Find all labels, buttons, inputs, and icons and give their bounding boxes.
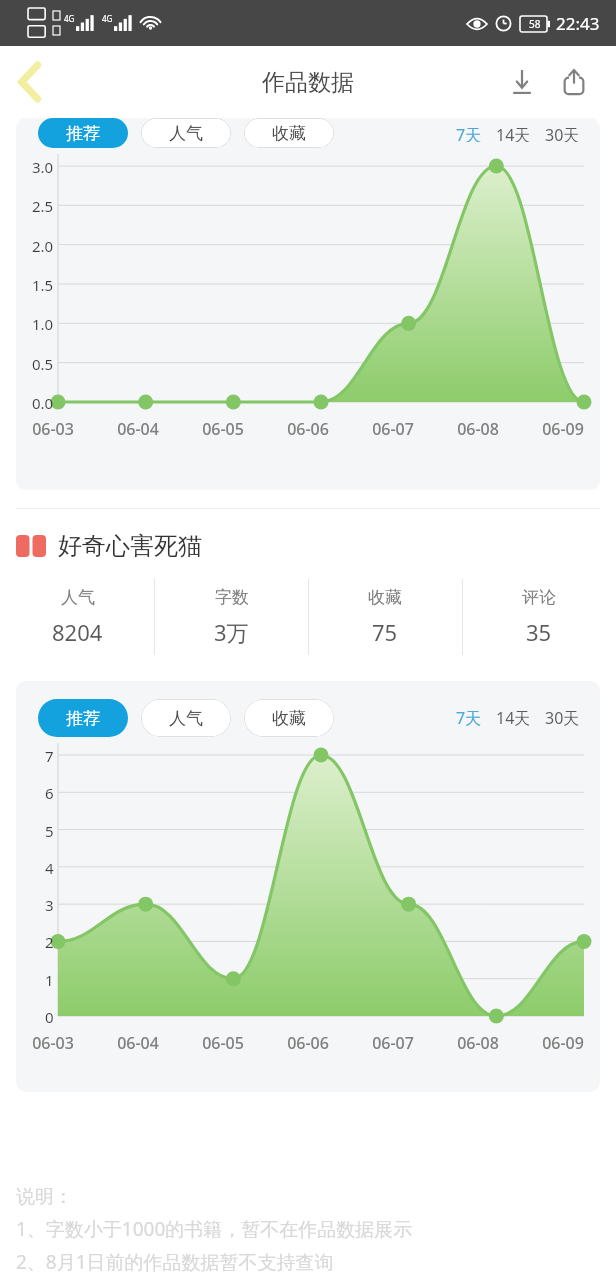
- staticText: 06-07: [356, 1032, 430, 1054]
- staticText: 58: [529, 17, 541, 31]
- staticText: 06-09: [526, 418, 600, 440]
- staticText: 收藏: [368, 587, 402, 608]
- button[interactable]: 30天: [543, 118, 582, 148]
- button[interactable]: 推荐: [38, 118, 128, 148]
- button[interactable]: 7天: [454, 701, 484, 735]
- staticText: 7天: [456, 707, 482, 729]
- staticText: 30天: [545, 124, 580, 142]
- staticText: 说明：: [16, 1185, 73, 1209]
- staticText: 3.0: [32, 157, 54, 175]
- staticText: 06-08: [441, 1032, 515, 1054]
- button[interactable]: 30天: [543, 701, 582, 735]
- staticText: 75: [372, 617, 398, 647]
- staticText: 06-04: [101, 1032, 175, 1054]
- button[interactable]: 推荐: [38, 699, 128, 737]
- staticText: 35: [526, 617, 552, 647]
- button[interactable]: 14天: [494, 701, 533, 735]
- staticText: 字数: [215, 587, 249, 608]
- staticText: 06-03: [16, 1032, 90, 1054]
- staticText: 1、字数小于1000的书籍，暂不在作品数据展示: [16, 1216, 413, 1242]
- staticText: 4G: [64, 13, 75, 24]
- button[interactable]: 14天: [494, 118, 533, 148]
- staticText: 06-06: [271, 418, 345, 440]
- staticText: 2.5: [32, 196, 54, 214]
- staticText: 14天: [496, 124, 531, 142]
- staticText: 06-09: [526, 1032, 600, 1054]
- staticText: 4: [45, 858, 54, 876]
- staticText: 0.0: [32, 393, 54, 411]
- staticText: 06-03: [16, 418, 90, 440]
- staticText: 22:43: [556, 12, 600, 35]
- staticText: 收藏: [272, 123, 306, 144]
- staticText: 7: [45, 746, 54, 764]
- staticText: 1.0: [32, 314, 54, 332]
- staticText: 评论: [522, 587, 556, 608]
- button[interactable]: 人气: [141, 699, 231, 737]
- button[interactable]: Share: [548, 56, 600, 108]
- button[interactable]: Download: [496, 56, 548, 108]
- staticText: 作品数据: [262, 68, 354, 97]
- staticText: 0.5: [32, 354, 54, 372]
- staticText: 4G: [102, 13, 113, 24]
- staticText: 8204: [52, 617, 103, 647]
- staticText: 06-04: [101, 418, 175, 440]
- staticText: 7天: [456, 124, 482, 142]
- staticText: 收藏: [272, 708, 306, 729]
- staticText: 人气: [169, 708, 203, 729]
- staticText: 30天: [545, 707, 580, 729]
- staticText: 14天: [496, 707, 531, 729]
- staticText: 2.0: [32, 236, 54, 254]
- staticText: 人气: [169, 123, 203, 144]
- staticText: 0: [45, 1007, 54, 1025]
- staticText: 推荐: [66, 708, 100, 729]
- staticText: 06-06: [271, 1032, 345, 1054]
- staticText: 06-07: [356, 418, 430, 440]
- staticText: 2: [45, 932, 54, 950]
- staticText: 人气: [61, 587, 95, 608]
- staticText: 3万: [214, 617, 249, 647]
- button[interactable]: Back: [0, 52, 60, 112]
- staticText: 好奇心害死猫: [58, 531, 202, 561]
- staticText: 3: [45, 895, 54, 913]
- button[interactable]: 人气: [141, 118, 231, 148]
- staticText: 1: [45, 970, 54, 988]
- staticText: 06-08: [441, 418, 515, 440]
- staticText: 2、8月1日前的作品数据暂不支持查询: [16, 1249, 334, 1275]
- staticText: 06-05: [186, 1032, 260, 1054]
- staticText: 5: [45, 821, 54, 839]
- staticText: 1.5: [32, 275, 54, 293]
- button[interactable]: 收藏: [244, 118, 334, 148]
- button[interactable]: 7天: [454, 118, 484, 148]
- staticText: 6: [45, 783, 54, 801]
- button[interactable]: 收藏: [244, 699, 334, 737]
- staticText: 推荐: [66, 123, 100, 144]
- staticText: 06-05: [186, 418, 260, 440]
